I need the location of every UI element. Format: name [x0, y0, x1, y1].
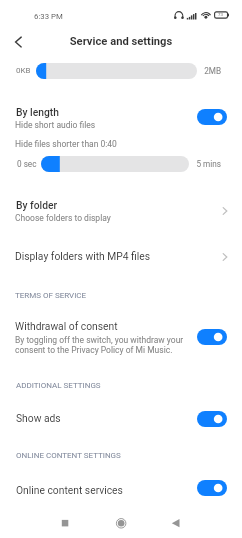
other: Open	[219, 251, 231, 263]
staticText: Hide short audio files	[15, 120, 96, 130]
button[interactable]: Show ads	[0, 404, 242, 434]
staticText: Hide files shorter than 0:40	[15, 139, 117, 149]
button[interactable]: Slider	[41, 156, 189, 172]
staticText: ADDITIONAL SETTINGS	[16, 381, 101, 390]
button[interactable]: By length	[0, 96, 242, 138]
button[interactable]: Back	[8, 28, 36, 56]
staticText: By folder	[16, 199, 58, 211]
button[interactable]: Online content services	[0, 474, 242, 504]
button[interactable]: Back	[156, 508, 196, 538]
staticText: Withdrawal of consent	[15, 320, 118, 332]
staticText: 73	[218, 12, 223, 17]
staticText: 0 sec	[17, 159, 37, 169]
button[interactable]: Recents	[45, 508, 85, 538]
staticText: 0KB	[16, 66, 31, 75]
staticText: 5 mins	[0, 159, 221, 169]
staticText: TERMS OF SERVICE	[15, 291, 87, 300]
button[interactable]: Toggle	[197, 411, 227, 427]
staticText: By toggling off the switch, you withdraw…	[15, 335, 184, 345]
staticText: 2MB	[0, 66, 221, 76]
staticText: Show ads	[16, 412, 61, 424]
button[interactable]: Slider	[36, 63, 197, 79]
other: Open	[219, 205, 231, 217]
button[interactable]: By folder	[0, 190, 242, 230]
staticText: Service and settings	[0, 35, 242, 48]
button[interactable]: Home	[101, 508, 141, 538]
staticText: Display folders with MP4 files	[15, 250, 151, 262]
button[interactable]: Display folders with MP4 files	[0, 242, 242, 272]
staticText: Choose folders to display	[15, 213, 111, 223]
staticText: ONLINE CONTENT SETTINGS	[16, 451, 121, 460]
staticText: By length	[16, 106, 59, 118]
button[interactable]: Withdrawal of consent	[0, 312, 242, 362]
staticText: consent to the Privacy Policy of Mi Musi…	[15, 345, 173, 355]
button[interactable]: Toggle	[197, 480, 227, 496]
staticText: 6:33 PM	[34, 12, 63, 21]
button[interactable]: Toggle	[197, 329, 227, 345]
button[interactable]: Toggle	[197, 109, 227, 125]
staticText: Online content services	[16, 484, 123, 496]
